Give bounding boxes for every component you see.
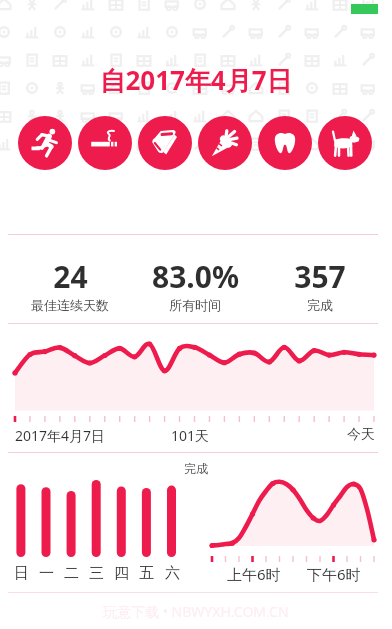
button[interactable]: Exercise — [18, 116, 72, 170]
staticText: 今天 — [347, 426, 375, 444]
staticText: 最佳连续天数 — [31, 297, 109, 313]
staticText: 五 — [139, 564, 154, 583]
button[interactable]: Read — [138, 116, 192, 170]
staticText: 玩意下载 • NBWYXH.COM.CN — [103, 602, 289, 621]
staticText: 所有时间 — [169, 297, 221, 313]
button[interactable]: Eat healthy — [198, 116, 252, 170]
staticText: 357 — [294, 256, 346, 297]
button[interactable]: Brush teeth — [258, 116, 312, 170]
staticText: 六 — [165, 564, 180, 583]
staticText: 二 — [64, 564, 79, 583]
staticText: 四 — [114, 564, 129, 583]
staticText: 一 — [39, 564, 54, 583]
staticText: 24 — [53, 256, 88, 297]
staticText: 上午6时 — [227, 564, 281, 584]
staticText: 2017年4月7日 — [15, 426, 106, 445]
staticText: 83.0% — [152, 256, 239, 297]
button[interactable]: Walk dog — [318, 116, 372, 170]
staticText: 101天 — [171, 426, 210, 445]
staticText: 自2017年4月7日 — [99, 62, 293, 98]
staticText: 日 — [14, 564, 29, 583]
staticText: 完成 — [307, 297, 333, 313]
staticText: 完成 — [184, 461, 208, 476]
staticText: 下午6时 — [307, 564, 361, 584]
button[interactable]: No smoking — [78, 116, 132, 170]
staticText: 三 — [89, 564, 104, 583]
